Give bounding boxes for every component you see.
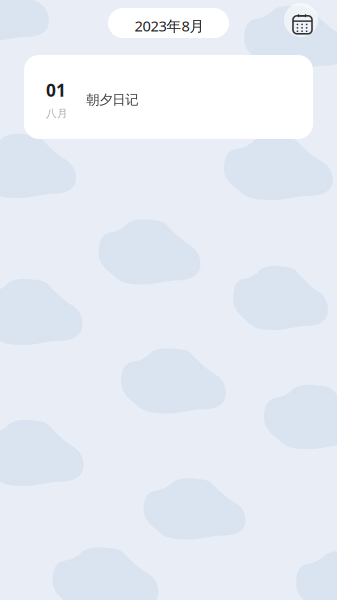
staticText: 八月 <box>46 107 68 120</box>
staticText: 01 <box>46 78 66 101</box>
button[interactable]: 2023年8月 <box>108 8 229 38</box>
button[interactable]: 01 <box>24 55 313 139</box>
staticText: 2023年8月 <box>134 16 204 35</box>
button[interactable]: Calendar <box>282 1 320 39</box>
staticText: 朝夕日记 <box>86 92 138 108</box>
